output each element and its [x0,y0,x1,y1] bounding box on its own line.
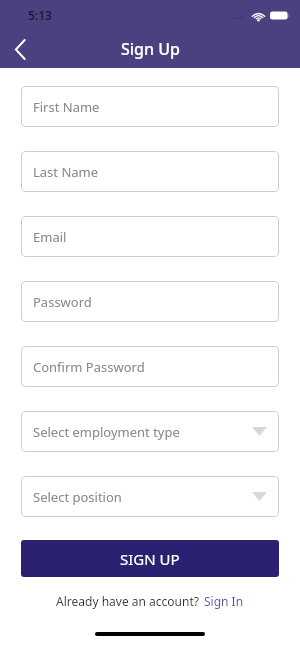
button[interactable]: Sign In [204,593,244,609]
staticText: Email [33,228,67,246]
button[interactable]: Back [0,30,40,68]
button[interactable]: First Name [21,86,279,127]
staticText: Already have an account? [56,593,199,609]
staticText: Select employment type [33,423,180,441]
staticText: Password [33,293,92,311]
button[interactable]: Select position [21,476,279,517]
button[interactable]: Last Name [21,151,279,192]
staticText: Confirm Password [33,358,145,376]
button[interactable]: SIGN UP [21,540,279,577]
button[interactable]: Password [21,281,279,322]
staticText: Sign Up [121,38,180,60]
staticText: Sign In [204,593,244,609]
button[interactable]: Select employment type [21,411,279,452]
staticText: Last Name [33,163,99,181]
staticText: Select position [33,488,122,506]
button[interactable]: Confirm Password [21,346,279,387]
staticText: 5:13 [28,7,52,23]
button[interactable]: Email [21,216,279,257]
staticText: SIGN UP [120,549,180,569]
staticText: First Name [33,98,100,116]
